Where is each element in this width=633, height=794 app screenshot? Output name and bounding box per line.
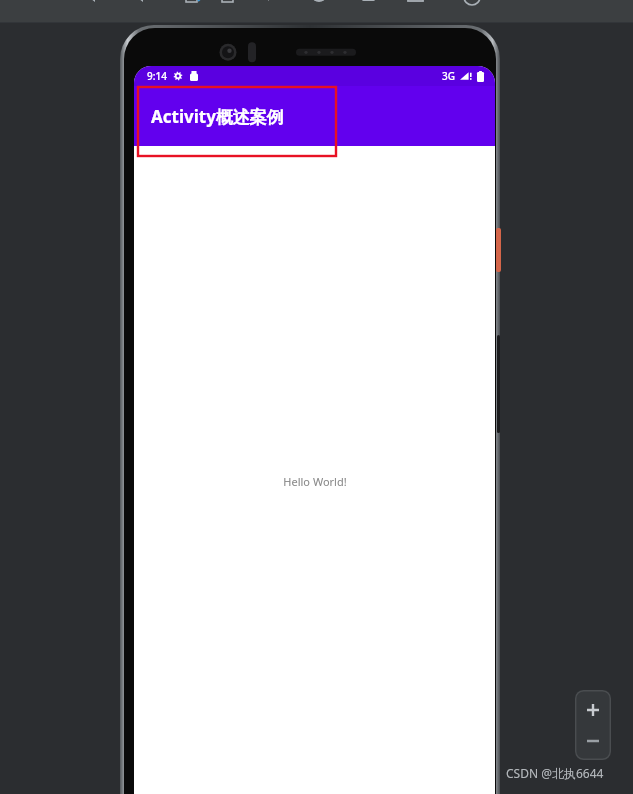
button[interactable]: Activity概述案例 <box>134 86 495 146</box>
staticText: Activity概述案例 <box>151 105 284 128</box>
staticText: 9:14 <box>147 69 167 83</box>
staticText: CSDN @北执6644 <box>506 765 604 781</box>
button[interactable]: Zoom in <box>575 694 611 725</box>
button[interactable]: Zoom out <box>575 725 611 756</box>
other: Volume <box>497 335 500 433</box>
staticText: Hello World! <box>283 474 347 489</box>
staticText: 3G <box>442 69 455 83</box>
other: Power <box>496 228 501 272</box>
